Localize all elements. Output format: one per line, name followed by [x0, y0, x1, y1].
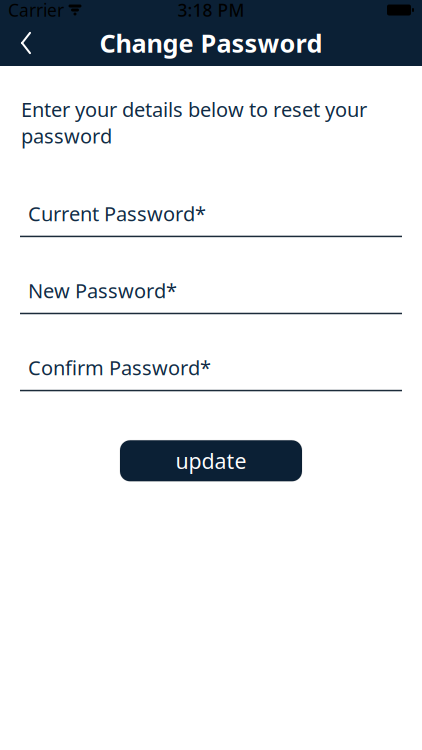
- staticText: update: [175, 447, 246, 475]
- staticText: Change Password: [99, 26, 322, 60]
- staticText: Confirm Password*: [28, 354, 211, 381]
- staticText: 3:18 PM: [177, 0, 244, 21]
- staticText: Current Password*: [28, 200, 206, 227]
- button[interactable]: update: [120, 440, 302, 481]
- staticText: New Password*: [28, 277, 177, 304]
- button[interactable]: Back: [0, 20, 52, 66]
- staticText: Carrier: [8, 0, 64, 21]
- staticText: Enter your details below to reset your p…: [21, 96, 367, 149]
